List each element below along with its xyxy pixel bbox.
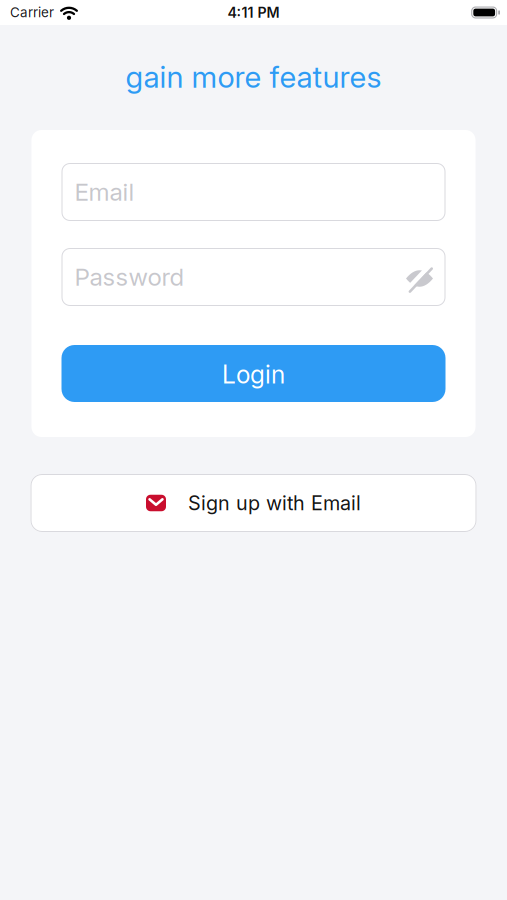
staticText: Password xyxy=(74,263,184,291)
button[interactable]: Login xyxy=(61,345,445,402)
staticText: Login xyxy=(222,360,285,389)
button[interactable]: Sign up with Email xyxy=(30,474,476,532)
staticText: Sign up with Email xyxy=(188,491,361,515)
staticText: gain more features xyxy=(125,59,381,95)
staticText: 4:11 PM xyxy=(227,4,279,21)
button[interactable]: Show password xyxy=(405,263,433,291)
staticText: Email xyxy=(74,178,134,206)
staticText: Carrier xyxy=(10,5,54,20)
